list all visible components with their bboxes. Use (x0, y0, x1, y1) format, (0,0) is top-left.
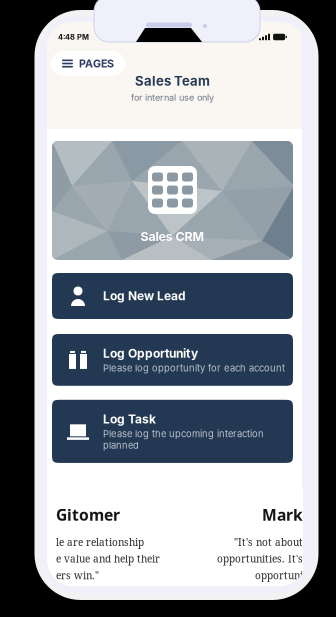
staticText: Gitomer (56, 504, 120, 525)
staticText: Log Task (103, 412, 156, 426)
staticText: Log Opportunity (103, 346, 198, 360)
button[interactable]: PAGES (51, 51, 125, 76)
staticText: "It's not about (234, 535, 303, 549)
button[interactable]: Log Opportunity (52, 334, 293, 386)
button[interactable]: Sales CRM (52, 141, 293, 260)
staticText: 4:48 PM (58, 32, 89, 41)
staticText: Sales Team (135, 73, 210, 89)
staticText: Mark (262, 504, 303, 525)
staticText: opportunities. It's (217, 552, 303, 565)
staticText: for internal use only (131, 92, 214, 103)
staticText: opportuni (255, 568, 303, 582)
staticText: PAGES (79, 57, 114, 70)
staticText: Please log opportunity for each account (103, 362, 285, 374)
staticText: ers win." (56, 568, 99, 582)
staticText: Log New Lead (103, 289, 186, 303)
button[interactable]: Log Task (52, 400, 293, 463)
staticText: Sales CRM (140, 229, 204, 244)
staticText: e value and help their (56, 552, 160, 565)
staticText: le are relationship (56, 535, 144, 549)
button[interactable]: Log New Lead (52, 273, 293, 319)
staticText: Please log the upcoming interaction plan… (103, 428, 264, 451)
